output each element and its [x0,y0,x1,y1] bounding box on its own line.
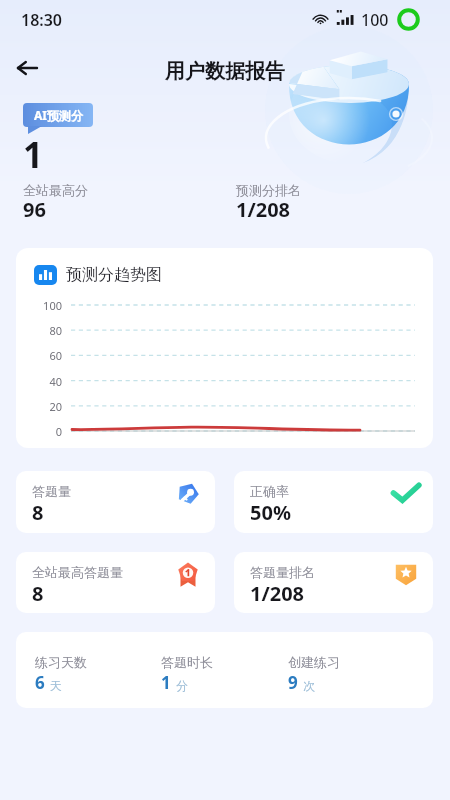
staticText: 1 [23,131,44,179]
staticText: 60 [49,348,62,363]
staticText: AI预测分 [34,107,83,123]
staticText: 9 [288,671,298,694]
staticText: 次 [303,678,315,693]
staticText: 天 [50,678,62,693]
staticText: 1/208 [250,580,305,607]
staticText: 正确率 [250,483,289,499]
staticText: 40 [49,374,62,389]
staticText: 答题量排名 [250,564,315,580]
staticText: 1/208 [236,196,291,223]
staticText: 创建练习 [288,654,340,670]
button[interactable]: 全站最高答题量 [16,552,215,613]
staticText: 分 [176,678,188,693]
staticText: 6 [35,671,45,694]
staticText: 1 [161,671,171,694]
staticText: 练习天数 [35,654,87,670]
button[interactable]: 正确率 [234,471,433,533]
button[interactable]: 答题量 [16,471,215,533]
staticText: 80 [49,323,62,338]
staticText: 50% [250,499,291,526]
staticText: 8 [32,499,44,526]
staticText: 18:30 [21,9,63,31]
staticText: 用户数据报告 [165,59,285,84]
button[interactable]: 答题量排名 [234,552,433,613]
staticText: 答题量 [32,483,71,499]
staticText: 8 [32,580,44,607]
staticText: 0 [55,424,62,439]
staticText: 预测分排名 [236,182,301,198]
staticText: 预测分趋势图 [66,265,162,285]
staticText: 100 [43,298,62,313]
staticText: 96 [23,196,46,223]
staticText: 全站最高分 [23,182,88,198]
staticText: 全站最高答题量 [32,564,123,580]
staticText: 答题时长 [161,654,213,670]
staticText: 20 [49,399,62,414]
button[interactable]: Back [8,49,46,87]
staticText: 100 [361,9,389,31]
